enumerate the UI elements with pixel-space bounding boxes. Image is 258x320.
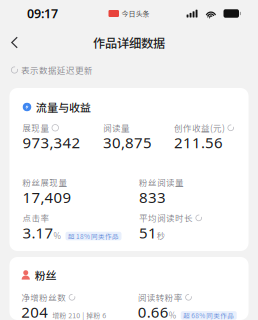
staticText: 创作收益(元): [174, 122, 225, 134]
staticText: 作品详细数据: [93, 34, 165, 51]
staticText: 973,342: [22, 132, 80, 153]
staticText: %: [169, 309, 176, 320]
staticText: 833: [139, 187, 166, 207]
staticText: 粉丝阅读量: [139, 176, 184, 188]
staticText: 点击率: [22, 212, 49, 224]
staticText: 204: [21, 302, 48, 320]
staticText: 09:17: [27, 5, 58, 22]
staticText: 30,875: [103, 132, 152, 153]
staticText: 0.66: [138, 302, 169, 320]
staticText: 净增粉丝数: [21, 291, 66, 303]
staticText: 秒: [157, 230, 165, 241]
button[interactable]: 返回: [0, 28, 31, 56]
staticText: 表示数据延迟更新: [21, 64, 93, 76]
staticText: %: [53, 230, 60, 241]
staticText: 阅读量: [103, 122, 130, 134]
staticText: 211.56: [174, 132, 223, 153]
staticText: 流量与收益: [36, 99, 91, 115]
staticText: 超 18% 同类作品: [68, 231, 119, 241]
staticText: 今日头条: [121, 8, 149, 18]
staticText: 粉丝: [35, 267, 57, 283]
staticText: 3.17: [22, 222, 53, 243]
staticText: 平均阅读时长: [139, 212, 193, 224]
staticText: 粉丝展现量: [22, 176, 67, 188]
staticText: 51: [139, 222, 157, 243]
staticText: 超 68% 同类作品: [183, 311, 234, 320]
staticText: 展现量: [22, 122, 49, 134]
staticText: 增粉 210 | 掉粉 6: [52, 310, 106, 320]
staticText: 阅读转粉率: [138, 291, 183, 303]
staticText: 17,409: [22, 187, 71, 207]
